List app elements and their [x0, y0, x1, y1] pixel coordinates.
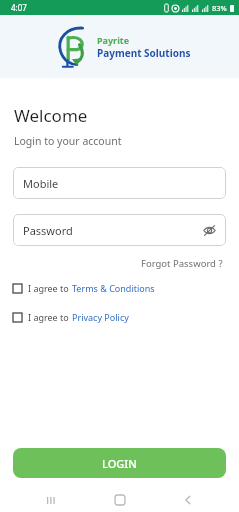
button[interactable]: Show password — [201, 222, 217, 238]
button[interactable]: I agree to — [13, 309, 226, 325]
button[interactable]: LOGIN — [13, 448, 226, 478]
staticText: Welcome — [14, 104, 88, 127]
staticText: LOGIN — [102, 456, 137, 471]
staticText: Login to your account — [14, 134, 122, 148]
staticText: I agree to — [28, 282, 72, 294]
staticText: Payment Solutions — [97, 46, 191, 60]
button[interactable]: Password — [13, 214, 226, 246]
button[interactable]: Home — [103, 488, 137, 512]
button[interactable]: Recent apps — [34, 488, 68, 512]
button[interactable]: Mobile — [13, 167, 226, 199]
staticText: Mobile — [23, 176, 59, 191]
button[interactable]: Forgot Password ? — [139, 255, 225, 272]
staticText: Terms & Conditions — [72, 282, 155, 294]
staticText: Forgot Password ? — [141, 257, 223, 270]
button[interactable]: Back — [171, 488, 205, 512]
button[interactable]: I agree to — [13, 280, 226, 296]
staticText: I agree to — [28, 311, 72, 323]
staticText: 83% — [212, 3, 227, 13]
staticText: Payrite — [97, 34, 130, 46]
staticText: Password — [23, 223, 73, 238]
staticText: 4:07 — [11, 2, 27, 13]
staticText: Privacy Policy — [72, 311, 129, 323]
